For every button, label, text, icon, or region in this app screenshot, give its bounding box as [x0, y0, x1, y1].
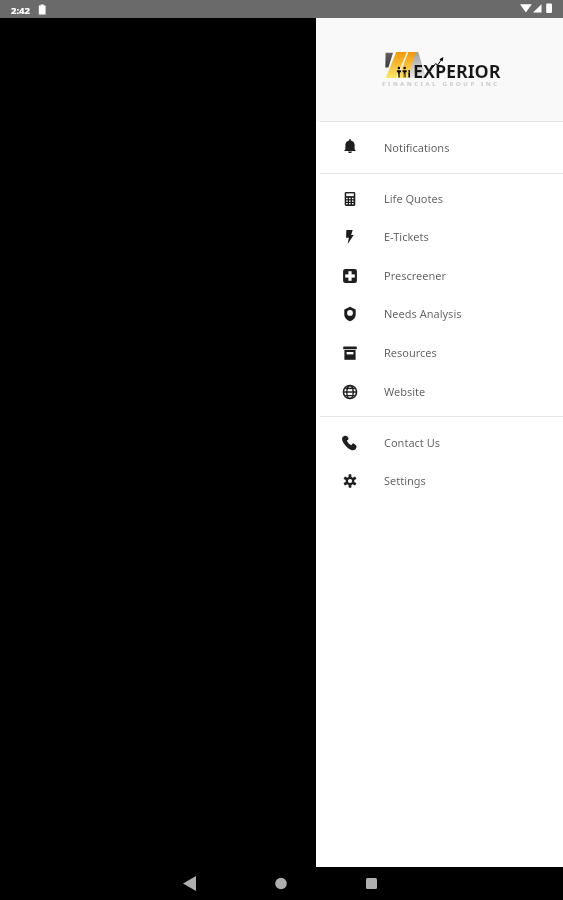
button[interactable]: Needs Analysis	[316, 294, 563, 333]
button[interactable]: Home	[251, 867, 311, 900]
staticText: Resources	[384, 345, 437, 360]
button[interactable]: Back	[160, 867, 220, 900]
button[interactable]: Notifications	[316, 121, 563, 173]
staticText: Website	[384, 384, 426, 399]
button[interactable]: Recent apps	[341, 867, 401, 900]
staticText: 2:42	[11, 4, 30, 17]
button[interactable]: Settings	[316, 461, 563, 500]
staticText: Contact Us	[384, 435, 440, 450]
staticText: E-Tickets	[384, 229, 429, 244]
button[interactable]: Website	[316, 372, 563, 411]
staticText: Life Quotes	[384, 191, 443, 206]
button[interactable]: Life Quotes	[316, 179, 563, 218]
button[interactable]: Contact Us	[316, 423, 563, 462]
button[interactable]: Prescreener	[316, 256, 563, 295]
staticText: Settings	[384, 473, 426, 488]
staticText: Notifications	[384, 140, 450, 155]
staticText: Prescreener	[384, 268, 447, 283]
button[interactable]: E-Tickets	[316, 217, 563, 256]
staticText: EXPERIOR	[413, 59, 501, 84]
staticText: Needs Analysis	[384, 306, 462, 321]
button[interactable]: Resources	[316, 333, 563, 372]
staticText: FINANCIAL GROUP INC	[382, 80, 498, 88]
